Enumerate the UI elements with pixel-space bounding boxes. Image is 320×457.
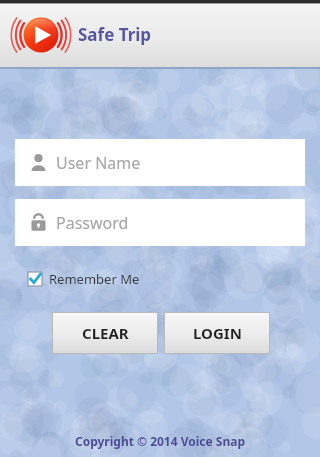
- staticText: LOGIN: [193, 323, 242, 343]
- staticText: Copyright © 2014 Voice Snap: [0, 433, 320, 449]
- staticText: Safe Trip: [78, 23, 152, 46]
- button[interactable]: Remember Me: [26, 268, 142, 290]
- staticText: Remember Me: [49, 270, 140, 288]
- other: Safe Trip logo: [10, 12, 72, 58]
- staticText: User Name: [56, 152, 141, 174]
- button[interactable]: Password: [15, 199, 305, 246]
- button[interactable]: CLEAR: [52, 312, 158, 354]
- button[interactable]: LOGIN: [164, 312, 270, 354]
- staticText: Password: [56, 212, 129, 234]
- staticText: CLEAR: [82, 323, 129, 343]
- button[interactable]: User Name: [15, 139, 305, 186]
